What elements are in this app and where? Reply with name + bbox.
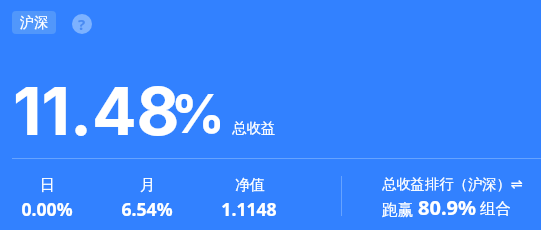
button[interactable]: 沪深 <box>12 11 56 34</box>
staticText: % <box>171 82 225 146</box>
staticText: 跑赢 <box>382 198 418 219</box>
staticText: 总收益 <box>232 119 276 137</box>
staticText: 0.00% <box>21 197 73 221</box>
staticText: 沪深 <box>20 14 48 32</box>
staticText: 11.48 <box>13 71 180 151</box>
staticText: 80.9% <box>418 194 476 221</box>
staticText: ? <box>78 14 86 34</box>
staticText: 6.54% <box>121 197 173 221</box>
staticText: 月 <box>140 176 155 195</box>
button[interactable]: Help <box>72 14 92 34</box>
staticText: 组合 <box>480 199 511 219</box>
staticText: 净值 <box>235 176 265 195</box>
button[interactable]: 日 <box>0 176 93 221</box>
button[interactable]: 总收益排行（沪深）⇌ <box>382 175 523 221</box>
staticText: 1.1148 <box>221 197 277 221</box>
staticText: 日 <box>40 176 55 195</box>
button[interactable]: 月 <box>100 176 193 221</box>
staticText: 总收益排行（沪深）⇌ <box>382 175 523 193</box>
button[interactable]: 净值 <box>202 176 295 221</box>
